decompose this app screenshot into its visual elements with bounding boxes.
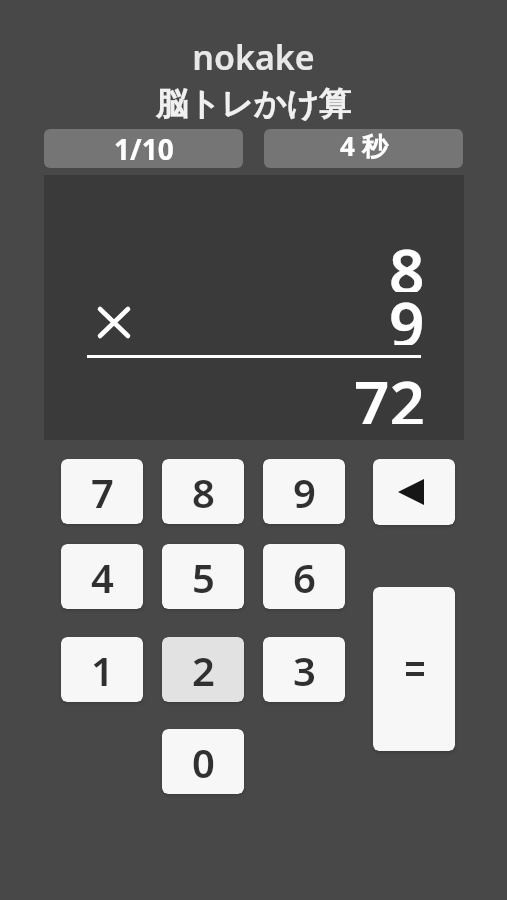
staticText: 4 秒: [340, 129, 388, 164]
staticText: 8: [192, 465, 215, 519]
button[interactable]: [373, 459, 455, 525]
staticText: 9: [389, 281, 425, 345]
button[interactable]: [373, 587, 455, 751]
staticText: 3: [293, 643, 316, 697]
staticText: 6: [293, 550, 316, 604]
button[interactable]: 4 秒: [264, 129, 463, 168]
staticText: 7: [91, 465, 114, 519]
button[interactable]: 3: [263, 637, 345, 702]
staticText: 8: [389, 228, 425, 292]
button[interactable]: 9: [263, 459, 345, 524]
staticText: 0: [192, 735, 215, 789]
button[interactable]: 2: [162, 637, 244, 702]
button[interactable]: 1: [61, 637, 143, 702]
staticText: 2: [192, 643, 215, 697]
button[interactable]: 4: [61, 544, 143, 609]
staticText: 脳トレかけ算: [0, 84, 507, 124]
staticText: 5: [192, 550, 215, 604]
button[interactable]: 7: [61, 459, 143, 524]
staticText: 72: [354, 360, 425, 424]
button[interactable]: 6: [263, 544, 345, 609]
staticText: nokake: [0, 34, 507, 80]
staticText: 1: [91, 643, 114, 697]
staticText: 1/10: [114, 130, 174, 168]
button[interactable]: 8: [162, 459, 244, 524]
button[interactable]: 1/10: [44, 129, 243, 168]
button[interactable]: 0: [162, 729, 244, 794]
staticText: 4: [91, 550, 114, 604]
staticText: 9: [293, 465, 316, 519]
button[interactable]: 5: [162, 544, 244, 609]
